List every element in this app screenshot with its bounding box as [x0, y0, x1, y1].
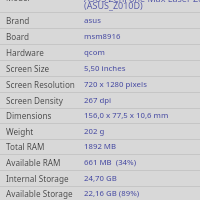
staticText: 22,16 GB (89%): [84, 188, 140, 199]
staticText: Model: [6, 0, 30, 3]
staticText: Dimensions: [6, 110, 84, 121]
staticText: 24,70 GB: [84, 173, 117, 184]
button[interactable]: Screen Density: [0, 92, 200, 108]
staticText: Screen Size: [6, 63, 84, 74]
staticText: Weight: [6, 126, 84, 137]
staticText: asus: [84, 15, 101, 26]
button[interactable]: Weight: [0, 123, 200, 139]
staticText: 267 dpi: [84, 95, 112, 106]
staticText: Available RAM: [6, 157, 84, 168]
staticText: qcom: [84, 47, 105, 58]
button[interactable]: Brand: [0, 12, 200, 28]
staticText: 202 g: [84, 126, 105, 137]
button[interactable]: Board: [0, 28, 200, 44]
staticText: 1892 MB: [84, 141, 117, 152]
button[interactable]: Screen Resolution: [0, 76, 200, 92]
staticText: ASUS ZenFone Max Laser Z010D: [84, 0, 200, 4]
button[interactable]: Hardware: [0, 44, 200, 60]
staticText: Available Storage: [6, 188, 84, 199]
button[interactable]: Internal Storage: [0, 170, 200, 186]
staticText: 5,50 inches: [84, 63, 126, 74]
staticText: 720 x 1280 pixels: [84, 79, 147, 90]
staticText: Total RAM: [6, 141, 84, 152]
staticText: Screen Density: [6, 95, 84, 106]
staticText: 156,0 x 77,5 x 10,6 mm: [84, 110, 169, 121]
staticText: Board: [6, 31, 84, 42]
staticText: Hardware: [6, 47, 84, 58]
button[interactable]: Available Storage: [0, 186, 200, 200]
button[interactable]: Available RAM: [0, 154, 200, 170]
button[interactable]: Model: [0, 0, 200, 12]
staticText: (ASUS_Z010D): [84, 0, 143, 11]
staticText: Brand: [6, 15, 84, 26]
staticText: Internal Storage: [6, 173, 84, 184]
button[interactable]: Dimensions: [0, 108, 200, 123]
staticText: 661 MB (34%): [84, 157, 137, 168]
staticText: msm8916: [84, 31, 121, 42]
staticText: Screen Resolution: [6, 79, 84, 90]
button[interactable]: Total RAM: [0, 139, 200, 154]
button[interactable]: Screen Size: [0, 60, 200, 76]
